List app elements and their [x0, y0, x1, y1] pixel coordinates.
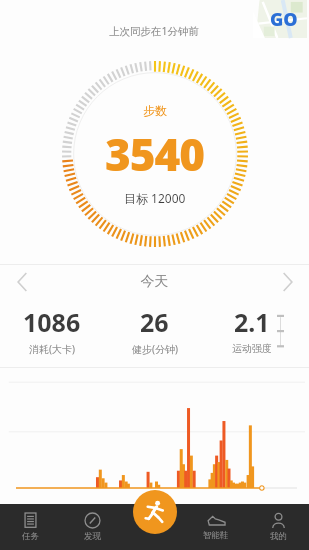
staticText: 上次同步在1分钟前: [109, 24, 200, 38]
button[interactable]: GO map: [253, 0, 307, 38]
staticText: 3540: [105, 124, 205, 184]
staticText: 今天: [44, 273, 265, 291]
staticText: 健步(分钟): [132, 342, 178, 356]
button[interactable]: 智能鞋: [185, 504, 247, 550]
button[interactable]: 任务: [0, 504, 61, 550]
button[interactable]: Next day: [265, 265, 309, 299]
staticText: 我的: [270, 531, 287, 542]
button[interactable]: Previous day: [0, 265, 44, 299]
button[interactable]: 发现: [61, 504, 123, 550]
staticText: 运动强度: [232, 342, 272, 355]
staticText: 发现: [84, 531, 101, 542]
staticText: 任务: [22, 531, 39, 542]
button[interactable]: 步数: [61, 60, 249, 248]
staticText: 步数: [143, 103, 167, 118]
staticText: 智能鞋: [203, 530, 229, 541]
button[interactable]: Start run: [133, 490, 177, 534]
staticText: GO: [270, 7, 298, 32]
button[interactable]: [0, 372, 309, 504]
button[interactable]: 26: [103, 305, 206, 356]
button[interactable]: 1086: [0, 305, 103, 356]
staticText: 1086: [23, 305, 81, 339]
staticText: 目标 12000: [124, 190, 186, 206]
button[interactable]: 我的: [247, 504, 309, 550]
staticText: 2.1: [234, 305, 270, 339]
staticText: 消耗(大卡): [29, 342, 75, 356]
staticText: 26: [140, 305, 169, 339]
